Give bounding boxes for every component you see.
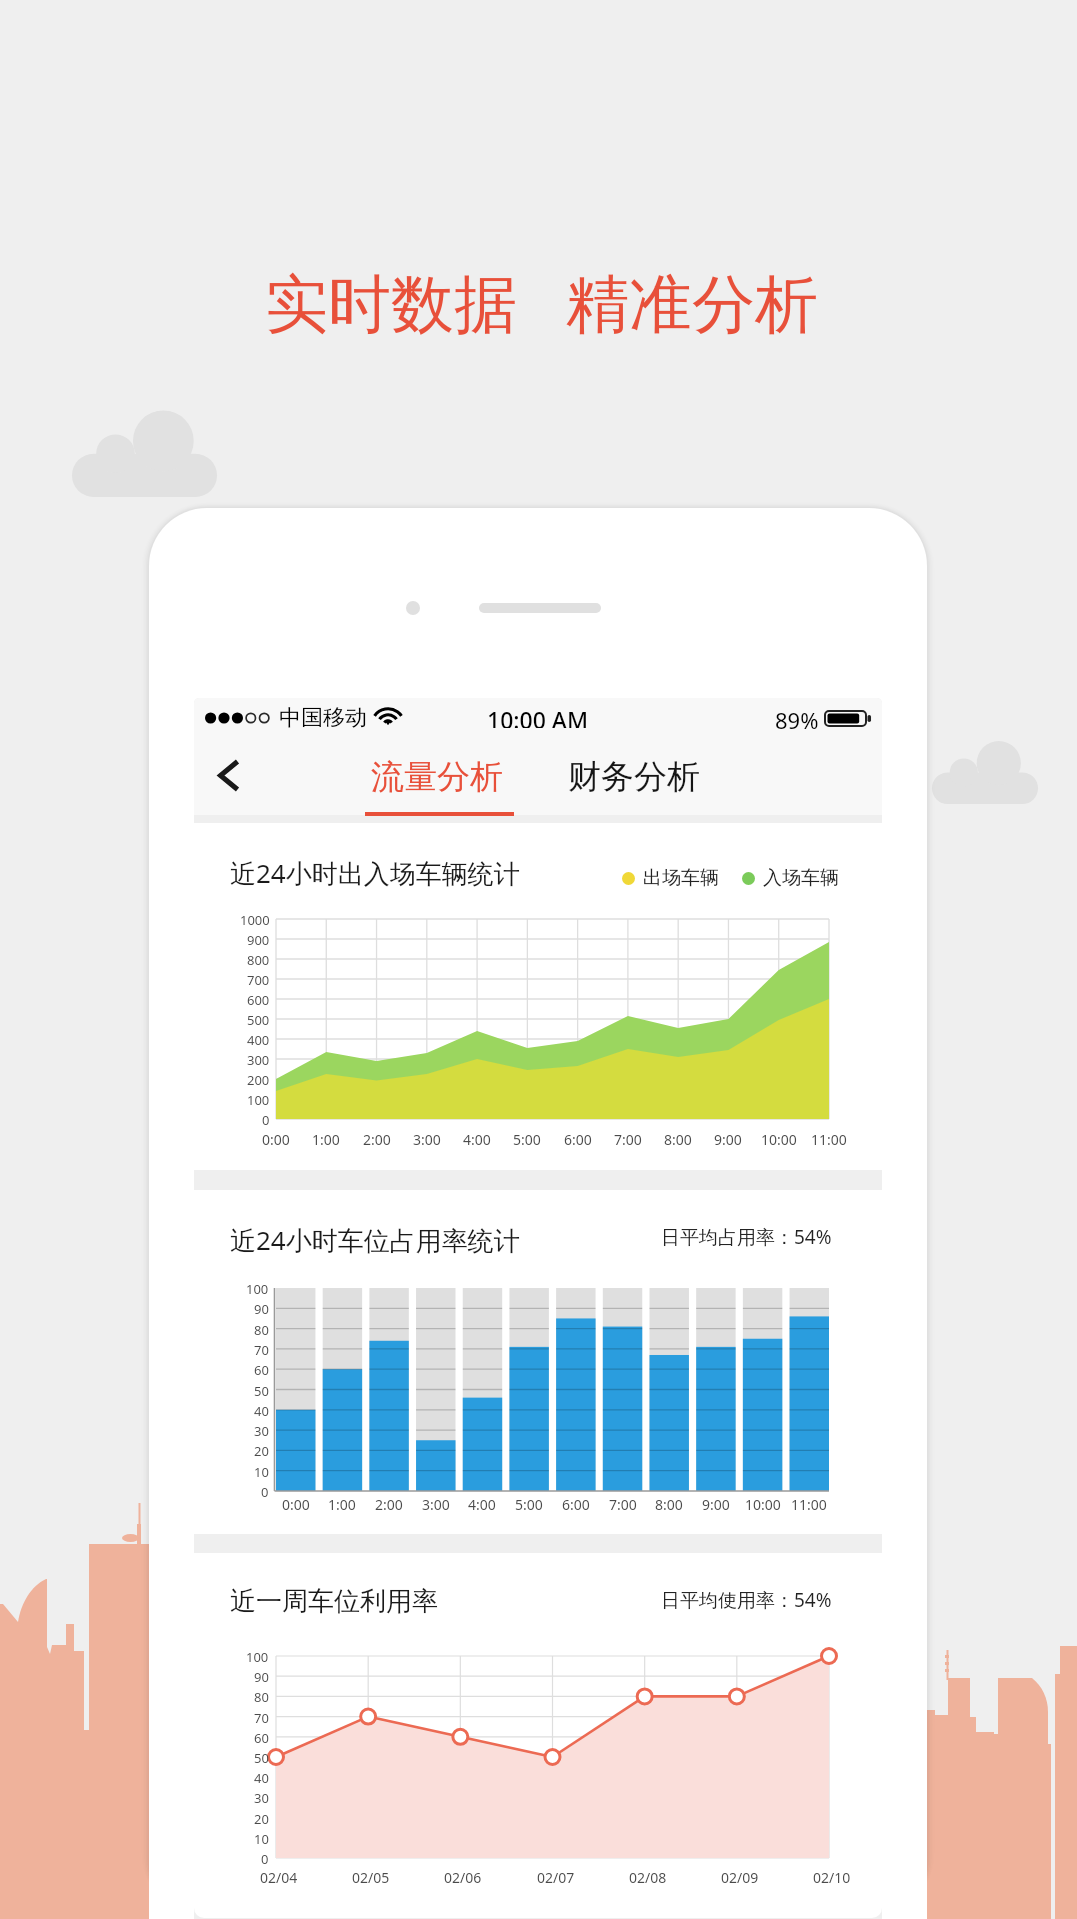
staticText: 5:00 [515,1495,543,1514]
staticText: 2:00 [363,1130,391,1149]
staticText: 800 [247,951,270,969]
staticText: 11:00 [791,1495,827,1514]
staticText: 11:00 [811,1130,847,1149]
staticText: 近24小时出入场车辆统计 [230,855,520,891]
staticText: 700 [247,971,270,989]
button[interactable]: 近24小时出入场车辆统计 [194,823,882,1170]
staticText: 02/07 [537,1868,575,1887]
staticText: 600 [247,991,270,1009]
staticText: 3:00 [413,1130,441,1149]
staticText: 10:00 [761,1130,797,1149]
staticText: 30 [254,1789,269,1807]
staticText: 0:00 [282,1495,310,1514]
staticText: 02/04 [260,1868,298,1887]
staticText: 近一周车位利用率 [230,1585,438,1618]
staticText: 89% [775,705,819,735]
button[interactable]: 财务分析 [551,742,717,814]
staticText: 70 [254,1709,269,1727]
staticText: 2:00 [375,1495,403,1514]
staticText: 入场车辆 [763,866,839,890]
button[interactable]: 近24小时车位占用率统计 [194,1190,882,1534]
staticText: 4:00 [463,1130,491,1149]
button[interactable]: 流量分析 [356,742,517,815]
staticText: 出场车辆 [643,866,719,890]
staticText: 40 [254,1402,269,1420]
staticText: 10:00 [745,1495,781,1514]
staticText: 400 [247,1031,270,1049]
staticText: 1:00 [312,1130,340,1149]
staticText: 8:00 [655,1495,683,1514]
button[interactable]: 近一周车位利用率 [194,1553,882,1918]
staticText: 200 [247,1071,270,1089]
staticText: 80 [254,1688,269,1706]
staticText: 900 [247,931,270,949]
staticText: 0 [262,1111,270,1129]
staticText: 3:00 [422,1495,450,1514]
staticText: 日平均使用率：54% [661,1587,832,1613]
staticText: 0 [261,1483,269,1501]
staticText: 500 [247,1011,270,1029]
staticText: 02/06 [444,1868,482,1887]
staticText: 90 [254,1300,269,1318]
staticText: 60 [254,1361,269,1379]
staticText: 实时数据 [265,265,517,344]
staticText: 100 [247,1091,270,1109]
staticText: 10 [254,1830,269,1848]
staticText: 50 [254,1749,269,1767]
staticText: 1:00 [328,1495,356,1514]
staticText: 90 [254,1668,269,1686]
staticText: 10 [254,1463,269,1481]
staticText: 6:00 [564,1130,592,1149]
staticText: 80 [254,1321,269,1339]
staticText: 6:00 [562,1495,590,1514]
staticText: 02/05 [352,1868,390,1887]
staticText: 精准分析 [566,265,818,344]
staticText: 财务分析 [568,756,700,798]
staticText: 60 [254,1729,269,1747]
staticText: 7:00 [614,1130,642,1149]
staticText: 9:00 [702,1495,730,1514]
staticText: 日平均占用率：54% [661,1224,832,1250]
staticText: 10:00 AM [487,704,589,728]
staticText: 300 [247,1051,270,1069]
staticText: 02/09 [721,1868,759,1887]
staticText: 70 [254,1341,269,1359]
staticText: 0 [261,1850,269,1868]
staticText: 20 [254,1442,269,1460]
staticText: 4:00 [468,1495,496,1514]
staticText: 中国移动 [279,704,367,732]
staticText: 近24小时车位占用率统计 [230,1222,520,1258]
staticText: 50 [254,1382,269,1400]
staticText: 8:00 [664,1130,692,1149]
staticText: 流量分析 [371,756,503,798]
staticText: 100 [246,1648,269,1666]
staticText: 0:00 [262,1130,290,1149]
staticText: 02/10 [813,1868,851,1887]
staticText: 9:00 [714,1130,742,1149]
staticText: 40 [254,1769,269,1787]
staticText: 30 [254,1422,269,1440]
staticText: 20 [254,1810,269,1828]
staticText: 02/08 [629,1868,667,1887]
staticText: 7:00 [609,1495,637,1514]
staticText: 100 [246,1280,269,1298]
staticText: 5:00 [513,1130,541,1149]
staticText: 1000 [240,911,270,929]
button[interactable]: Back [198,740,260,810]
